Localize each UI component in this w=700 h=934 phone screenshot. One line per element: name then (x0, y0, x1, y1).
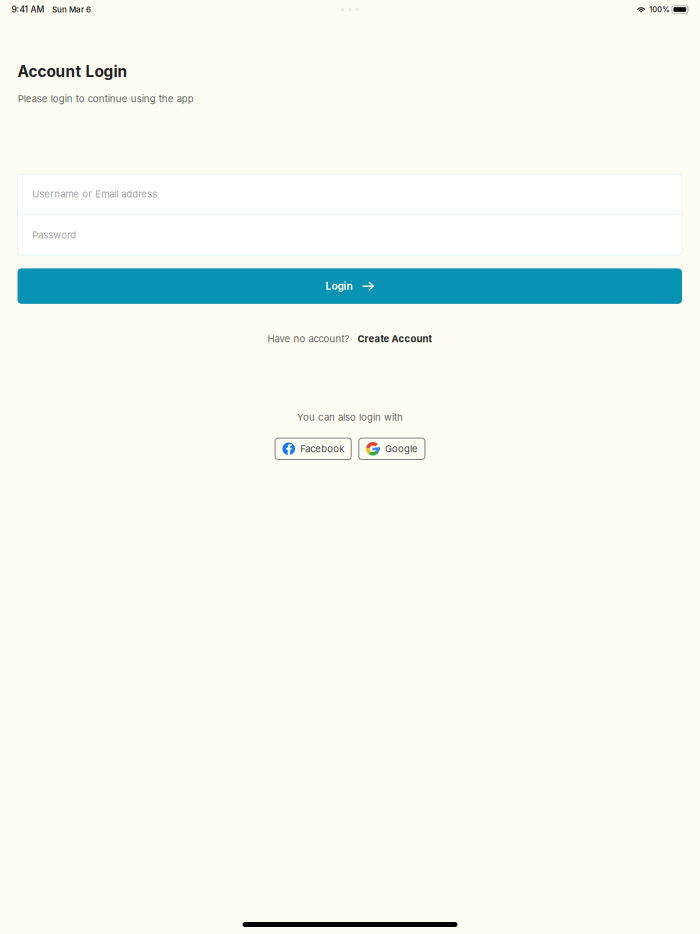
staticText: Username or Email address (32, 188, 157, 200)
staticText: Sun Mar 6 (52, 5, 91, 14)
staticText: Please login to continue using the app (18, 93, 194, 105)
staticText: You can also login with (297, 411, 403, 423)
button[interactable]: Password (17, 215, 682, 255)
staticText: Account Login (17, 62, 127, 81)
button[interactable]: Create Account (349, 333, 432, 344)
button[interactable]: Login (17, 268, 682, 304)
button[interactable]: Facebook (275, 438, 351, 459)
staticText: Login (326, 280, 353, 292)
staticText: Password (32, 229, 76, 241)
staticText: Facebook (300, 443, 344, 455)
button[interactable]: Google (359, 438, 425, 459)
staticText: Create Account (357, 333, 432, 344)
staticText: Have no account? (267, 333, 349, 344)
staticText: Google (385, 443, 418, 455)
button[interactable]: Username or Email address (17, 174, 682, 214)
staticText: 9:41 AM (11, 4, 44, 15)
staticText: 100% (649, 5, 669, 14)
